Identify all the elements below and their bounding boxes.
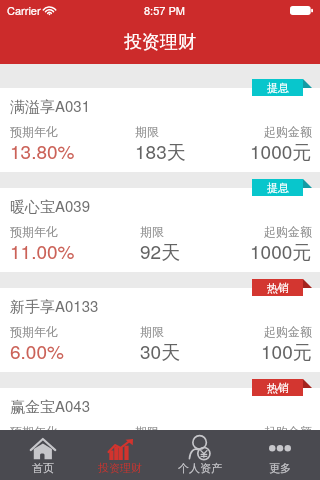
staticText: 92天: [140, 237, 181, 264]
staticText: 期限: [135, 424, 159, 439]
staticText: 起购金额: [264, 124, 312, 139]
staticText: 1000元: [250, 137, 312, 164]
staticText: 180天: [135, 437, 186, 464]
staticText: 投资理财: [124, 31, 196, 54]
button[interactable]: 新手享A0133: [0, 288, 320, 372]
staticText: 100元: [261, 337, 312, 364]
staticText: 183天: [135, 137, 186, 164]
staticText: 1000元: [250, 237, 312, 264]
staticText: 满溢享A031: [10, 95, 91, 117]
button[interactable]: 个人资产: [160, 430, 240, 480]
button[interactable]: 首页: [0, 430, 80, 480]
button[interactable]: 更多: [240, 430, 320, 480]
staticText: 热销: [267, 381, 289, 395]
staticText: Carrier: [7, 2, 41, 18]
staticText: 11.00%: [10, 237, 75, 264]
staticText: 预期年化: [10, 124, 58, 139]
staticText: 8:57 PM: [144, 2, 185, 18]
button[interactable]: 赢金宝A043: [0, 388, 320, 430]
staticText: 30天: [140, 337, 181, 364]
staticText: 投资理财: [98, 461, 142, 475]
staticText: 提息: [267, 81, 289, 95]
staticText: 暖心宝A039: [10, 195, 91, 217]
staticText: 起购金额: [264, 324, 312, 339]
button[interactable]: 满溢享A031: [0, 88, 320, 172]
staticText: 预期年化: [10, 424, 58, 439]
staticText: 热销: [267, 281, 289, 295]
staticText: 期限: [140, 224, 164, 239]
staticText: 起购金额: [264, 424, 312, 439]
staticText: 更多: [269, 461, 291, 475]
staticText: 新手享A0133: [10, 295, 99, 317]
staticText: 1000元: [250, 437, 312, 464]
button[interactable]: 投资理财: [80, 430, 160, 480]
staticText: 预期年化: [10, 224, 58, 239]
button[interactable]: 暖心宝A039: [0, 188, 320, 272]
staticText: 提息: [267, 181, 289, 195]
staticText: 9.60%: [10, 437, 64, 464]
staticText: 13.80%: [10, 137, 75, 164]
staticText: 6.00%: [10, 337, 64, 364]
staticText: 预期年化: [10, 324, 58, 339]
staticText: 期限: [135, 124, 159, 139]
staticText: 个人资产: [178, 461, 222, 475]
staticText: 赢金宝A043: [10, 395, 91, 417]
staticText: 起购金额: [264, 224, 312, 239]
staticText: 首页: [32, 461, 54, 475]
staticText: 期限: [140, 324, 164, 339]
